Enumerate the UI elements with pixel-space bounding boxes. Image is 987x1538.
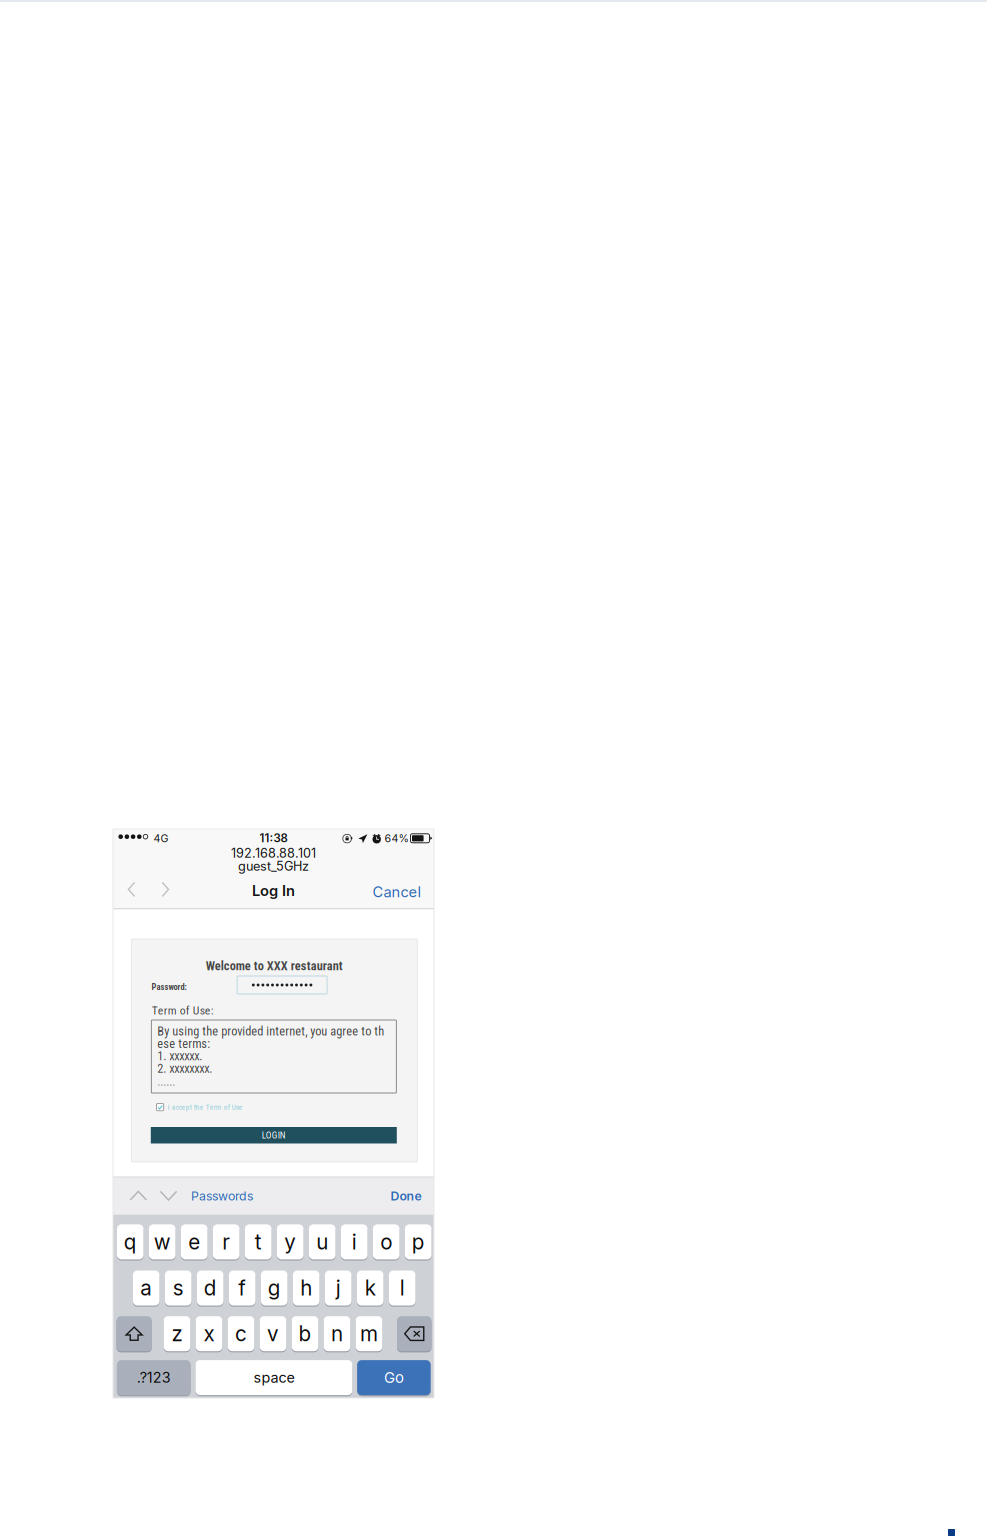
staticText: r: [222, 1229, 230, 1254]
staticText: v: [267, 1321, 279, 1346]
button[interactable]: Back: [121, 877, 147, 901]
button[interactable]: LOGIN: [151, 1127, 397, 1143]
button[interactable]: a: [133, 1270, 159, 1306]
staticText: Password:: [152, 982, 187, 992]
button[interactable]: y: [277, 1224, 303, 1260]
button[interactable]: b: [292, 1316, 318, 1352]
staticText: 2. xxxxxxxx.: [157, 1061, 212, 1076]
staticText: o: [380, 1229, 392, 1254]
staticText: t: [255, 1229, 262, 1254]
staticText: j: [336, 1275, 341, 1300]
staticText: s: [173, 1275, 184, 1300]
staticText: i: [352, 1229, 357, 1254]
button[interactable]: Delete: [397, 1316, 431, 1352]
staticText: space: [253, 1369, 294, 1386]
button[interactable]: Passwords: [191, 1186, 253, 1206]
button[interactable]: q: [117, 1224, 143, 1260]
button[interactable]: f: [229, 1270, 255, 1306]
button[interactable]: .?123: [117, 1359, 191, 1396]
staticText: LOGIN: [262, 1130, 286, 1141]
button[interactable]: m: [356, 1316, 382, 1352]
button[interactable]: x: [196, 1316, 222, 1352]
button[interactable]: Forward: [155, 877, 181, 901]
staticText: ......: [157, 1074, 175, 1089]
staticText: Done: [390, 1189, 421, 1203]
staticText: Welcome to XXX restaurant: [206, 959, 343, 973]
staticText: m: [360, 1321, 378, 1346]
button[interactable]: Shift: [116, 1316, 152, 1352]
button[interactable]: Done: [390, 1186, 421, 1206]
button[interactable]: l: [389, 1270, 415, 1306]
staticText: k: [365, 1275, 376, 1300]
staticText: l: [400, 1275, 405, 1300]
staticText: p: [412, 1229, 425, 1254]
staticText: ese terms:: [157, 1036, 210, 1051]
staticText: q: [124, 1229, 137, 1254]
button[interactable]: I accept the Term of Use: [156, 1103, 243, 1111]
staticText: 192.168.88.101: [231, 845, 316, 861]
button[interactable]: g: [261, 1270, 287, 1306]
staticText: u: [316, 1229, 328, 1254]
button[interactable]: z: [164, 1316, 190, 1352]
staticText: y: [284, 1229, 296, 1254]
staticText: Go: [384, 1369, 404, 1387]
staticText: 4G: [153, 832, 168, 845]
staticText: guest_5GHz: [238, 858, 309, 874]
button[interactable]: Go: [357, 1359, 431, 1396]
staticText: a: [140, 1275, 152, 1300]
staticText: n: [331, 1321, 343, 1346]
button[interactable]: s: [165, 1270, 191, 1306]
staticText: Cancel: [372, 883, 421, 901]
button[interactable]: t: [245, 1224, 271, 1260]
button[interactable]: o: [373, 1224, 399, 1260]
button[interactable]: c: [228, 1316, 254, 1352]
button[interactable]: Next field: [155, 1183, 181, 1208]
button[interactable]: r: [213, 1224, 239, 1260]
staticText: h: [300, 1275, 312, 1300]
button[interactable]: Previous field: [125, 1183, 151, 1208]
staticText: e: [188, 1229, 200, 1254]
button[interactable]: n: [324, 1316, 350, 1352]
staticText: f: [238, 1275, 246, 1300]
staticText: .?123: [137, 1369, 171, 1386]
staticText: w: [154, 1229, 171, 1254]
button[interactable]: h: [293, 1270, 319, 1306]
staticText: I accept the Term of Use: [168, 1103, 243, 1111]
button[interactable]: j: [325, 1270, 351, 1306]
staticText: 64%: [384, 832, 408, 845]
staticText: Term of Use:: [152, 1003, 214, 1017]
staticText: Log In: [252, 882, 295, 899]
staticText: c: [235, 1321, 247, 1346]
button[interactable]: space: [195, 1359, 352, 1396]
staticText: d: [204, 1275, 217, 1300]
staticText: g: [268, 1275, 281, 1300]
staticText: x: [203, 1321, 214, 1346]
button[interactable]: p: [405, 1224, 431, 1260]
staticText: By using the provided internet, you agre…: [157, 1024, 384, 1038]
button[interactable]: w: [149, 1224, 175, 1260]
button[interactable]: k: [357, 1270, 383, 1306]
button[interactable]: d: [197, 1270, 223, 1306]
staticText: b: [298, 1321, 311, 1346]
button[interactable]: v: [260, 1316, 286, 1352]
button[interactable]: u: [309, 1224, 335, 1260]
staticText: z: [171, 1321, 182, 1346]
staticText: 1. xxxxxx.: [157, 1049, 202, 1063]
button[interactable]: i: [341, 1224, 367, 1260]
staticText: Passwords: [191, 1189, 253, 1203]
button[interactable]: Cancel: [372, 882, 421, 902]
button[interactable]: e: [181, 1224, 207, 1260]
staticText: 11:38: [259, 831, 287, 845]
